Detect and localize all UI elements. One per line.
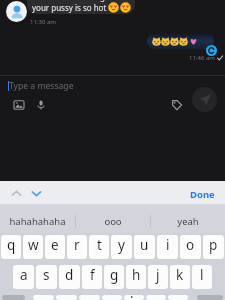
- staticText: h: [132, 266, 141, 284]
- button[interactable]: Done: [176, 184, 225, 205]
- staticText: d: [65, 266, 74, 284]
- staticText: j: [156, 266, 160, 284]
- button[interactable]: u: [134, 235, 155, 259]
- staticText: a: [20, 266, 28, 284]
- button[interactable]: i wanna see u tonight: [27, 0, 135, 14]
- staticText: e: [51, 236, 59, 254]
- button[interactable]: h: [126, 265, 146, 289]
- button[interactable]: [147, 33, 214, 49]
- button[interactable]: Previous field: [10, 187, 23, 200]
- staticText: 11:46 am: [189, 54, 215, 62]
- button[interactable]: f: [82, 265, 102, 289]
- staticText: q: [7, 236, 16, 254]
- staticText: Type a message: [9, 80, 74, 92]
- staticText: y: [118, 236, 125, 254]
- button[interactable]: Send: [192, 87, 217, 112]
- button[interactable]: ooo: [76, 204, 150, 233]
- button[interactable]: s: [36, 265, 57, 289]
- button[interactable]: hahahahaha: [0, 204, 75, 233]
- staticText: i wanna see u tonight: [32, 0, 113, 2]
- button[interactable]: g: [104, 265, 124, 289]
- button[interactable]: i: [157, 235, 178, 259]
- button[interactable]: Shift: [2, 295, 25, 300]
- button[interactable]: Attach image: [12, 98, 25, 111]
- button[interactable]: Backspace: [197, 295, 223, 300]
- button[interactable]: yeah: [151, 204, 225, 233]
- button[interactable]: Record voice message: [34, 98, 47, 111]
- button[interactable]: j: [148, 265, 168, 289]
- staticText: b: [130, 295, 139, 298]
- staticText: w: [28, 236, 39, 254]
- staticText: t: [97, 236, 102, 254]
- button[interactable]: e: [45, 235, 65, 259]
- button[interactable]: l: [192, 265, 212, 289]
- staticText: 11:30 am: [30, 18, 56, 26]
- button[interactable]: a: [13, 265, 34, 289]
- staticText: yeah: [177, 215, 199, 228]
- staticText: your pussy is so hot: [32, 2, 107, 13]
- button[interactable]: w: [23, 235, 43, 259]
- staticText: f: [90, 266, 95, 284]
- staticText: r: [74, 236, 80, 254]
- button[interactable]: t: [89, 235, 109, 259]
- button[interactable]: q: [1, 235, 21, 259]
- button[interactable]: b: [124, 295, 144, 300]
- button[interactable]: x: [56, 295, 77, 300]
- button[interactable]: c: [79, 295, 100, 300]
- button[interactable]: Profile photo: [6, 1, 27, 22]
- button[interactable]: Stickers: [170, 98, 183, 111]
- staticText: ooo: [104, 215, 122, 228]
- staticText: o: [186, 236, 195, 254]
- staticText: g: [110, 266, 119, 284]
- button[interactable]: d: [59, 265, 80, 289]
- button[interactable]: z: [33, 295, 54, 300]
- staticText: l: [200, 266, 204, 284]
- staticText: k: [176, 266, 184, 284]
- staticText: u: [140, 236, 149, 254]
- button[interactable]: p: [203, 235, 224, 259]
- staticText: i: [166, 236, 170, 254]
- button[interactable]: r: [67, 235, 87, 259]
- button[interactable]: y: [111, 235, 132, 259]
- button[interactable]: Next field: [30, 187, 43, 200]
- button[interactable]: k: [170, 265, 190, 289]
- button[interactable]: n: [146, 295, 166, 300]
- staticText: hahahahaha: [9, 215, 66, 228]
- staticText: s: [43, 266, 50, 284]
- button[interactable]: v: [102, 295, 122, 300]
- staticText: p: [209, 236, 218, 254]
- staticText: Done: [190, 188, 215, 201]
- button[interactable]: Reply reaction: [206, 45, 217, 56]
- button[interactable]: m: [168, 295, 188, 300]
- button[interactable]: o: [180, 235, 201, 259]
